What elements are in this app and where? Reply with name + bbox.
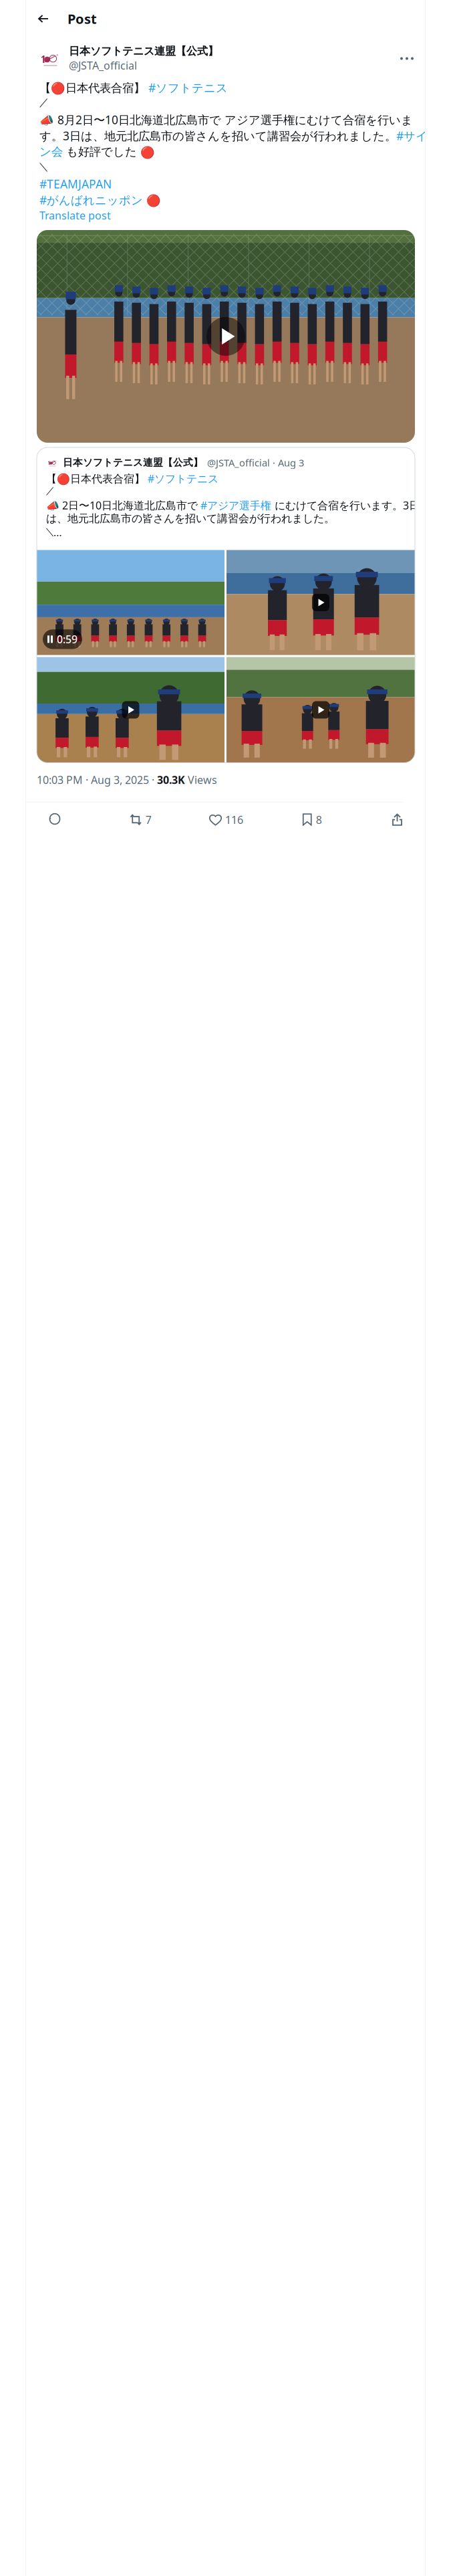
- staticText: は、地元北広島市の皆さんを招いて講習会が行われました。: [46, 512, 335, 525]
- staticText: 0:59: [57, 632, 78, 646]
- staticText: #TEAMJAPAN: [39, 176, 112, 192]
- staticText: ン会 も好評でした 🔴: [39, 145, 155, 159]
- staticText: 【🔴日本代表合宿】 #ソフトテニス: [39, 80, 228, 95]
- staticText: 📣 8月2日〜10日北海道北広島市で アジア選手権にむけて合宿を行いま: [39, 112, 413, 127]
- staticText: 📣 2日〜10日北海道北広島市で #アジア選手権 にむけて合宿を行います。3日: [46, 498, 420, 512]
- staticText: ⟋: [39, 98, 47, 109]
- button[interactable]: Repost: [122, 806, 158, 833]
- button[interactable]: Back: [31, 7, 55, 31]
- button[interactable]: Bookmark: [294, 806, 330, 833]
- staticText: 日本ソフトテニス連盟【公式】: [69, 44, 218, 58]
- button[interactable]: Share: [380, 806, 416, 833]
- staticText: #がんばれニッポン 🔴: [39, 192, 161, 208]
- staticText: 116: [225, 813, 243, 827]
- staticText: 日本ソフトテニス連盟【公式】: [63, 457, 203, 469]
- staticText: ⟍…: [46, 525, 62, 539]
- staticText: ⟍: [39, 162, 47, 173]
- staticText: ⟋: [46, 487, 53, 497]
- staticText: Views: [185, 773, 217, 787]
- staticText: 【🔴日本代表合宿】 #ソフトテニス: [46, 471, 218, 486]
- staticText: 8: [316, 813, 322, 827]
- staticText: 30.3K: [157, 773, 185, 787]
- staticText: Translate post: [39, 208, 111, 222]
- staticText: @JSTA_official · Aug 3: [207, 456, 304, 469]
- staticText: @JSTA_official: [69, 58, 137, 72]
- staticText: 10:03 PM · Aug 3, 2025 ·: [37, 773, 157, 787]
- button[interactable]: Translate post: [39, 208, 415, 223]
- button[interactable]: Like: [208, 806, 244, 833]
- staticText: す。3日は、地元北広島市の皆さんを招いて講習会が行われました。#サイ: [39, 128, 428, 143]
- button[interactable]: Reply: [37, 806, 73, 833]
- button[interactable]: More: [397, 48, 417, 69]
- staticText: 7: [146, 813, 152, 827]
- staticText: Post: [67, 10, 97, 28]
